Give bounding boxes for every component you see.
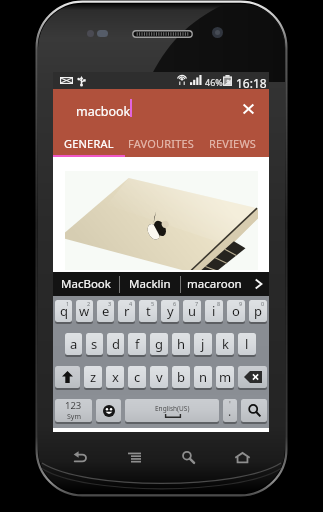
staticText: 0 bbox=[261, 300, 265, 307]
staticText: Macklin bbox=[129, 276, 171, 292]
button[interactable]: c bbox=[128, 366, 146, 388]
staticText: i bbox=[212, 302, 216, 320]
button[interactable]: q bbox=[55, 300, 72, 322]
button[interactable]: a bbox=[65, 333, 82, 355]
staticText: . bbox=[228, 403, 232, 419]
staticText: a bbox=[70, 335, 78, 353]
button[interactable]: j bbox=[194, 333, 212, 355]
staticText: u bbox=[188, 302, 197, 320]
staticText: v bbox=[156, 368, 163, 386]
staticText: REVIEWS bbox=[209, 136, 257, 151]
button[interactable]: z bbox=[84, 366, 102, 388]
button[interactable]: k bbox=[216, 333, 234, 355]
staticText: 3 bbox=[108, 300, 112, 307]
staticText: GENERAL bbox=[64, 136, 114, 151]
button[interactable]: macbook bbox=[71, 93, 231, 126]
staticText: k bbox=[222, 335, 229, 353]
staticText: t bbox=[146, 302, 151, 320]
staticText: 123 bbox=[65, 399, 82, 412]
button[interactable]: More suggestions bbox=[248, 272, 269, 296]
staticText: MacBook bbox=[61, 276, 111, 292]
button[interactable]: GENERAL bbox=[53, 130, 125, 157]
staticText: 5 bbox=[151, 300, 155, 307]
staticText: g bbox=[155, 335, 163, 353]
button[interactable]: Space bbox=[125, 399, 219, 422]
staticText: 8 bbox=[217, 300, 221, 307]
button[interactable]: FAVOURITES bbox=[125, 130, 197, 157]
staticText: ' bbox=[229, 399, 231, 410]
staticText: Sym bbox=[67, 412, 81, 422]
staticText: s bbox=[91, 335, 98, 353]
staticText: p bbox=[254, 302, 262, 320]
staticText: macbook bbox=[76, 103, 131, 120]
staticText: x bbox=[112, 368, 119, 386]
button[interactable]: Search bbox=[161, 444, 215, 470]
button[interactable]: u bbox=[183, 300, 201, 322]
staticText: n bbox=[199, 368, 208, 386]
button[interactable]: g bbox=[150, 333, 168, 355]
button[interactable]: d bbox=[107, 333, 124, 355]
button[interactable]: Search bbox=[241, 399, 267, 422]
staticText: y bbox=[167, 302, 174, 320]
button[interactable]: b bbox=[172, 366, 190, 388]
staticText: 4 bbox=[129, 300, 133, 307]
staticText: 16:18 bbox=[236, 75, 267, 91]
button[interactable]: o bbox=[227, 300, 245, 322]
button[interactable]: e bbox=[97, 300, 114, 322]
button[interactable]: r bbox=[118, 300, 135, 322]
staticText: j bbox=[201, 335, 205, 353]
staticText: h bbox=[177, 335, 186, 353]
button[interactable]: Home bbox=[215, 444, 269, 470]
button[interactable]: y bbox=[161, 300, 179, 322]
button[interactable]: macaroon bbox=[181, 272, 248, 296]
staticText: 6 bbox=[173, 300, 177, 307]
button[interactable]: Period bbox=[223, 399, 237, 422]
staticText: macaroon bbox=[187, 276, 242, 292]
button[interactable]: Backspace bbox=[238, 366, 267, 388]
button[interactable]: p bbox=[249, 300, 267, 322]
button[interactable]: m bbox=[216, 366, 234, 388]
staticText: FAVOURITES bbox=[128, 136, 195, 151]
staticText: b bbox=[177, 368, 185, 386]
staticText: English(US) bbox=[155, 404, 190, 413]
staticText: c bbox=[134, 368, 141, 386]
staticText: 7 bbox=[195, 300, 199, 307]
button[interactable]: Shift bbox=[55, 366, 80, 388]
button[interactable]: i bbox=[205, 300, 223, 322]
staticText: 9 bbox=[239, 300, 243, 307]
staticText: f bbox=[135, 335, 140, 353]
button[interactable]: Back bbox=[53, 444, 107, 470]
staticText: 1 bbox=[66, 300, 70, 307]
staticText: 46% bbox=[205, 76, 223, 88]
button[interactable]: Macklin bbox=[120, 272, 180, 296]
button[interactable]: v bbox=[150, 366, 168, 388]
staticText: z bbox=[90, 368, 97, 386]
button[interactable]: s bbox=[86, 333, 103, 355]
button[interactable]: w bbox=[76, 300, 93, 322]
staticText: q bbox=[60, 302, 68, 320]
staticText: e bbox=[102, 302, 110, 320]
button[interactable]: l bbox=[238, 333, 256, 355]
staticText: l bbox=[245, 335, 249, 353]
staticText: o bbox=[232, 302, 240, 320]
staticText: r bbox=[124, 302, 130, 320]
button[interactable]: f bbox=[128, 333, 146, 355]
button[interactable]: Symbols bbox=[55, 399, 92, 422]
staticText: m bbox=[219, 368, 232, 386]
staticText: w bbox=[79, 302, 90, 320]
button[interactable]: t bbox=[139, 300, 157, 322]
staticText: d bbox=[112, 335, 120, 353]
button[interactable]: h bbox=[172, 333, 190, 355]
button[interactable]: Menu bbox=[107, 444, 161, 470]
button[interactable]: x bbox=[106, 366, 124, 388]
button[interactable]: Emoji bbox=[96, 399, 121, 422]
button[interactable]: REVIEWS bbox=[197, 130, 269, 157]
button[interactable]: Clear search bbox=[230, 91, 266, 126]
button[interactable]: MacBook bbox=[53, 272, 119, 296]
button[interactable]: n bbox=[194, 366, 212, 388]
staticText: 2 bbox=[87, 300, 91, 307]
